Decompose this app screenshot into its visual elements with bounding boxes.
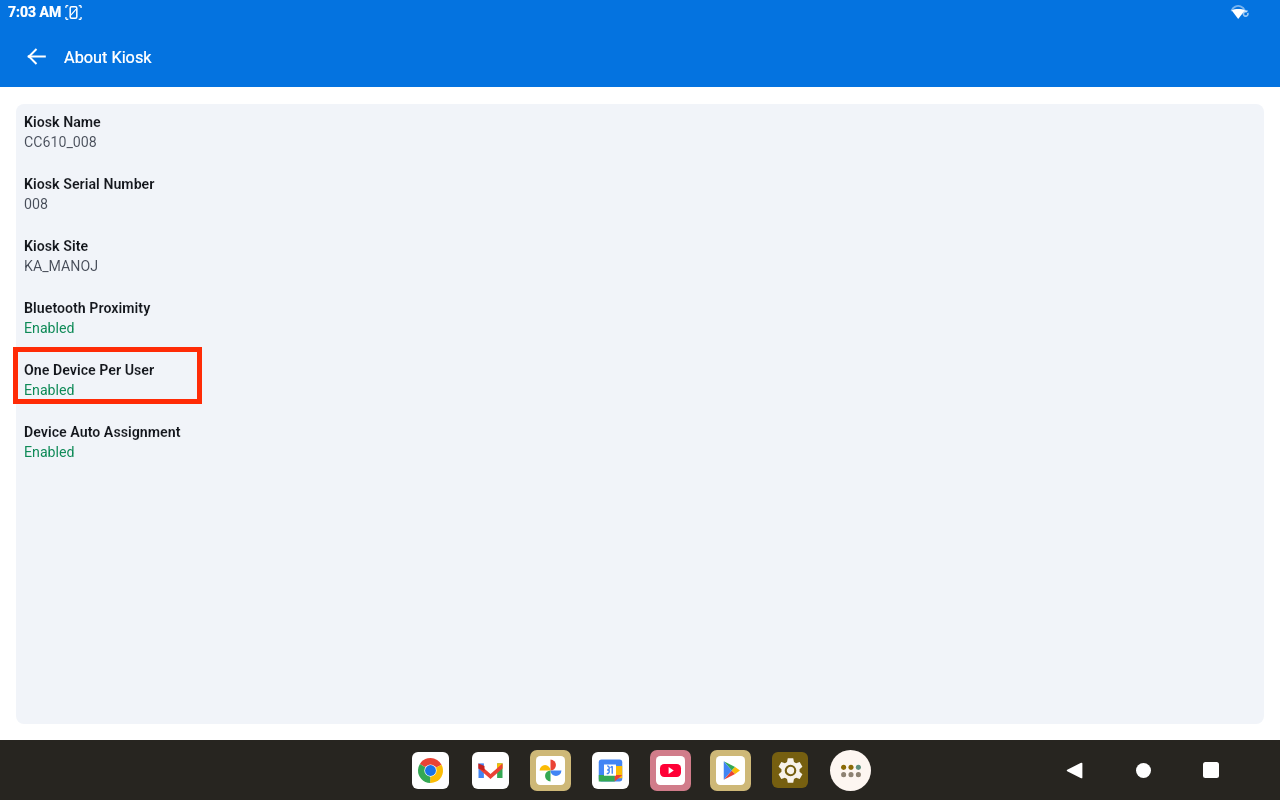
button[interactable]: App: [530, 750, 571, 791]
staticText: 008: [24, 196, 48, 213]
button[interactable]: Kiosk Site: [24, 228, 1264, 275]
staticText: Kiosk Name: [24, 114, 101, 131]
staticText: 7:03 AM: [8, 4, 62, 20]
button[interactable]: Home: [1122, 749, 1164, 791]
button[interactable]: App: [650, 750, 691, 791]
staticText: Device Auto Assignment: [24, 424, 181, 441]
button[interactable]: Settings: [772, 752, 808, 788]
button[interactable]: All apps: [830, 750, 871, 791]
button[interactable]: App: [592, 752, 629, 789]
button[interactable]: App: [710, 750, 751, 791]
staticText: CC610_008: [24, 134, 97, 151]
staticText: KA_MANOJ: [24, 258, 99, 275]
button[interactable]: Bluetooth Proximity: [24, 290, 1264, 337]
button[interactable]: One Device Per User highlighted: [13, 347, 202, 404]
staticText: Kiosk Site: [24, 238, 89, 255]
button[interactable]: Device Auto Assignment: [24, 414, 1264, 461]
staticText: Bluetooth Proximity: [24, 300, 151, 317]
staticText: About Kiosk: [64, 48, 152, 67]
button[interactable]: Back: [1053, 749, 1095, 791]
button[interactable]: One Device Per User: [24, 352, 1264, 399]
staticText: Enabled: [24, 382, 75, 399]
button[interactable]: Back: [12, 32, 60, 80]
staticText: Enabled: [24, 320, 75, 337]
button[interactable]: App: [412, 752, 449, 789]
button[interactable]: Kiosk Name: [24, 104, 1264, 151]
button[interactable]: Recents: [1190, 749, 1232, 791]
staticText: One Device Per User: [24, 362, 155, 379]
button[interactable]: App: [472, 752, 509, 789]
staticText: Kiosk Serial Number: [24, 176, 155, 193]
button[interactable]: Kiosk Serial Number: [24, 166, 1264, 213]
staticText: Enabled: [24, 444, 75, 461]
